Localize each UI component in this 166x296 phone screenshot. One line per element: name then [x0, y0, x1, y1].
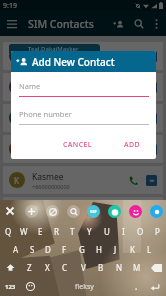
- staticText: +66000000004: [32, 121, 70, 128]
- staticText: CANCEL: [63, 140, 92, 150]
- staticText: F: [62, 244, 67, 255]
- staticText: T: [15, 51, 20, 62]
- button[interactable]: More options: [148, 16, 164, 32]
- staticText: B: [98, 262, 104, 273]
- button[interactable]: Call Dao: [126, 142, 141, 157]
- button[interactable]: J: [107, 240, 124, 258]
- button[interactable]: Add: [25, 205, 38, 218]
- staticText: R: [54, 226, 59, 237]
- button[interactable]: K: [3, 166, 163, 194]
- staticText: N: [116, 262, 123, 273]
- staticText: K: [14, 175, 20, 186]
- staticText: O: [137, 226, 144, 237]
- button[interactable]: X: [38, 258, 56, 277]
- button[interactable]: G: [73, 240, 90, 258]
- button[interactable]: Emoji: [129, 205, 142, 218]
- button[interactable]: Y: [81, 222, 98, 240]
- button[interactable]: C: [3, 104, 163, 132]
- button[interactable]: Open navigation menu: [3, 15, 21, 33]
- button[interactable]: L: [141, 240, 158, 258]
- staticText: P: [155, 226, 160, 237]
- staticText: Teal.DakaiMasker: [28, 45, 79, 53]
- button[interactable]: Message Teal.DakaiMasker: [146, 51, 157, 62]
- staticText: C: [62, 262, 68, 273]
- button[interactable]: Change theme: [46, 205, 59, 218]
- button[interactable]: Message Nok: [146, 206, 157, 217]
- button[interactable]: Message Chai: [146, 113, 157, 124]
- staticText: .: [135, 281, 138, 292]
- button[interactable]: F: [56, 240, 73, 258]
- button[interactable]: R: [48, 222, 64, 240]
- button[interactable]: T: [64, 222, 81, 240]
- button[interactable]: CANCEL: [56, 136, 99, 154]
- button[interactable]: B: [92, 258, 110, 277]
- button[interactable]: GIF: [87, 205, 100, 218]
- button[interactable]: Enter: [144, 277, 166, 296]
- staticText: Kasmee: [32, 171, 64, 183]
- staticText: Q: [5, 226, 12, 237]
- button[interactable]: Message Kasmee: [146, 175, 157, 186]
- staticText: L: [147, 244, 152, 255]
- staticText: 9:19: [3, 1, 17, 11]
- button[interactable]: S: [24, 240, 40, 258]
- button[interactable]: V: [74, 258, 92, 277]
- button[interactable]: Add contact: [109, 15, 127, 33]
- button[interactable]: A: [8, 240, 24, 258]
- staticText: Add New Contact: [32, 55, 115, 69]
- staticText: +66000000000: [32, 183, 70, 190]
- staticText: GIF: [90, 209, 97, 214]
- staticText: E: [38, 226, 43, 237]
- button[interactable]: P: [149, 222, 166, 240]
- staticText: M: [133, 262, 141, 273]
- staticText: fleksy: [75, 282, 94, 292]
- button[interactable]: D: [3, 135, 163, 163]
- staticText: S: [30, 244, 35, 255]
- button[interactable]: T: [3, 42, 163, 70]
- button[interactable]: B: [3, 73, 163, 101]
- button[interactable]: Z: [20, 258, 38, 277]
- button[interactable]: M: [128, 258, 146, 277]
- button[interactable]: Emoji keyboard: [20, 277, 40, 296]
- button[interactable]: N: [110, 258, 128, 277]
- button[interactable]: Call Nok: [126, 204, 141, 219]
- staticText: V: [81, 262, 86, 273]
- button[interactable]: More: [150, 205, 163, 218]
- staticText: 123: [5, 283, 16, 291]
- button[interactable]: Call Kasmee: [126, 173, 141, 188]
- staticText: A: [13, 244, 19, 255]
- staticText: Phone number: [19, 109, 72, 119]
- staticText: J: [114, 244, 117, 255]
- button[interactable]: E: [32, 222, 48, 240]
- button[interactable]: Numbers: [0, 277, 20, 296]
- button[interactable]: D: [40, 240, 56, 258]
- button[interactable]: N: [3, 197, 163, 225]
- button[interactable]: Space: [40, 277, 128, 296]
- staticText: ADD: [124, 140, 141, 150]
- button[interactable]: Call Teal.DakaiMasker: [126, 49, 141, 64]
- staticText: N: [14, 206, 21, 217]
- staticText: Nok: [32, 202, 49, 214]
- button[interactable]: Backspace: [146, 258, 166, 277]
- button[interactable]: Call Chai: [126, 111, 141, 126]
- button[interactable]: Search: [130, 15, 148, 33]
- button[interactable]: Close toolbar: [3, 204, 17, 218]
- button[interactable]: U: [98, 222, 115, 240]
- button[interactable]: O: [132, 222, 149, 240]
- button[interactable]: Shift: [0, 258, 20, 277]
- staticText: D: [45, 244, 51, 255]
- button[interactable]: W: [16, 222, 32, 240]
- button[interactable]: I: [115, 222, 132, 240]
- button[interactable]: ADD: [117, 136, 148, 154]
- staticText: W: [20, 226, 28, 237]
- button[interactable]: Period: [128, 277, 144, 296]
- button[interactable]: H: [90, 240, 107, 258]
- button[interactable]: Search: [67, 205, 80, 218]
- button[interactable]: Message Dao: [146, 144, 157, 155]
- button[interactable]: Message Bank: [146, 82, 157, 93]
- button[interactable]: C: [56, 258, 74, 277]
- button[interactable]: Stickers: [108, 205, 121, 218]
- button[interactable]: Q: [0, 222, 16, 240]
- button[interactable]: K: [124, 240, 141, 258]
